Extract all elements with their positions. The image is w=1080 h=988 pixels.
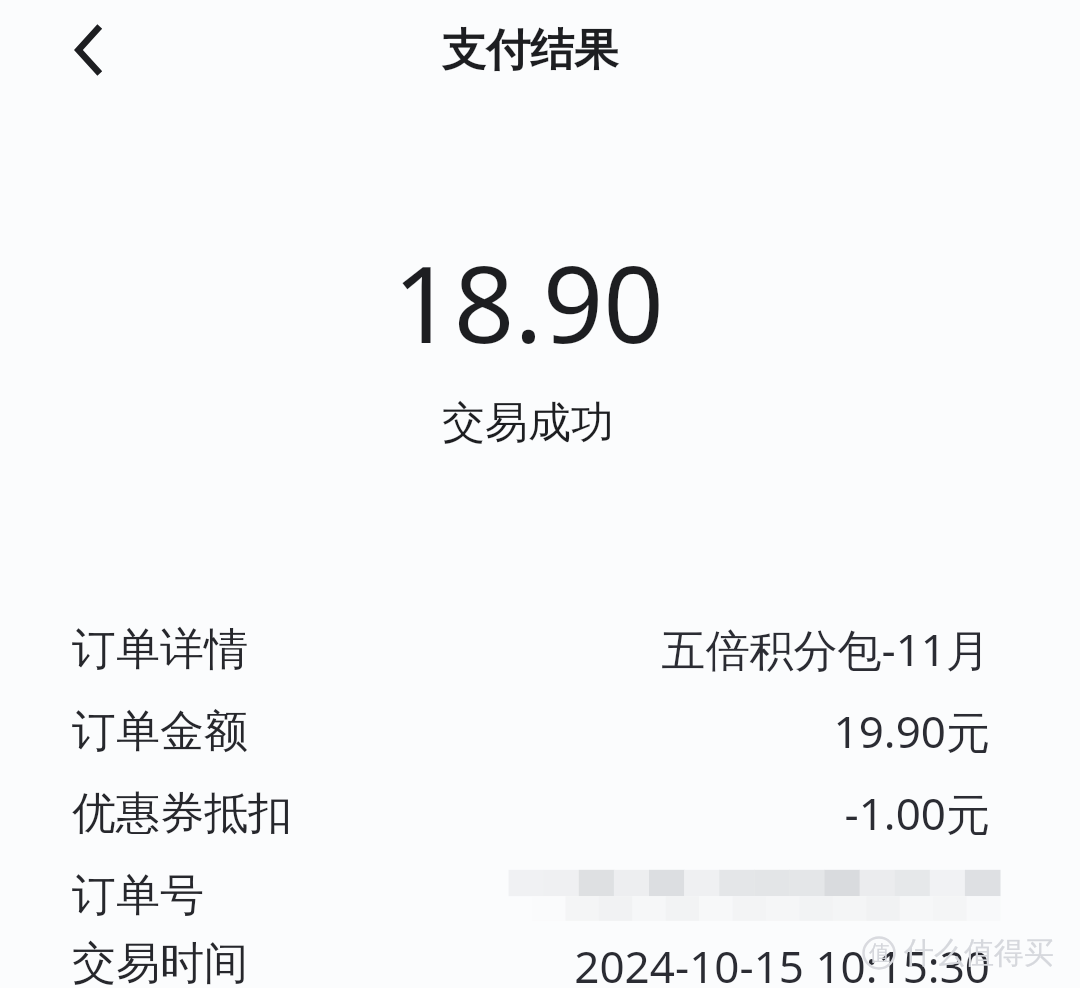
staticText: 值: [869, 940, 890, 966]
button[interactable]: Back: [52, 14, 124, 86]
staticText: 支付结果: [442, 23, 618, 78]
staticText: 2024-10-15 10:15:30: [574, 936, 990, 988]
button[interactable]: 订单号: [0, 854, 1080, 936]
staticText: 订单详情: [72, 622, 248, 677]
staticText: 交易成功: [442, 396, 614, 450]
staticText: 交易时间: [72, 936, 248, 988]
button[interactable]: 优惠券抵扣: [0, 772, 1080, 854]
staticText: 什么值得买: [904, 934, 1054, 972]
staticText: 18.90: [393, 230, 664, 374]
button[interactable]: 交易时间: [0, 936, 1080, 988]
staticText: 订单金额: [72, 704, 248, 759]
staticText: -1.00元: [844, 783, 990, 843]
staticText: 19.90元: [833, 701, 990, 761]
button[interactable]: 订单金额: [0, 690, 1080, 772]
staticText: 五倍积分包-11月: [661, 619, 990, 679]
staticText: 订单号: [72, 868, 204, 923]
button[interactable]: 订单详情: [0, 608, 1080, 690]
staticText: 优惠券抵扣: [72, 786, 292, 841]
